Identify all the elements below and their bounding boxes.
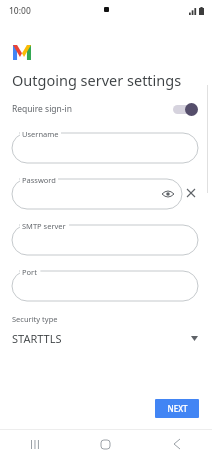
staticText: SMTP server [22,221,66,231]
button[interactable]: Recent apps [0,429,70,459]
staticText: Outgoing server settings [12,70,182,90]
staticText: NEXT [167,403,188,414]
staticText: Username [22,129,59,139]
staticText: STARTTLS [12,331,62,346]
button[interactable]: Clear password [182,184,200,202]
button[interactable]: SMTP server [12,225,198,255]
staticText: Port [22,267,37,277]
button[interactable]: Require sign-in toggle [172,102,198,116]
staticText: Security type [12,314,58,324]
button[interactable]: NEXT [155,399,199,418]
button[interactable]: Home [70,429,141,459]
button[interactable]: Back [141,429,212,459]
button[interactable]: Security type [0,314,212,346]
staticText: Password [22,175,56,185]
button[interactable]: Password [12,179,182,209]
button[interactable]: Port [12,271,198,301]
button[interactable]: Show password [160,186,176,202]
staticText: Require sign-in [12,103,73,115]
button[interactable]: Username [12,133,198,163]
button[interactable]: Require sign-in [0,97,212,121]
staticText: 10:00 [9,5,31,17]
